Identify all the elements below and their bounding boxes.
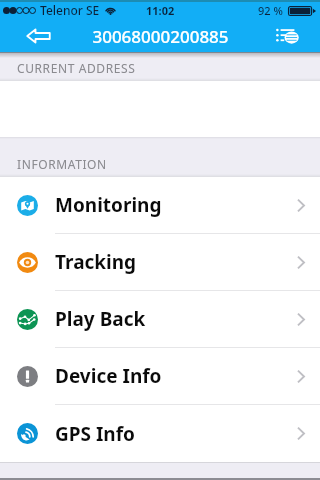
staticText: 92 %	[258, 3, 283, 18]
staticText: 30068000200885	[92, 25, 229, 48]
button[interactable]: Reports	[268, 20, 306, 52]
staticText: Tracking	[55, 249, 137, 275]
button[interactable]: Play Back	[0, 291, 320, 347]
staticText: 11:02	[146, 3, 175, 18]
button[interactable]: GPS Info	[0, 405, 320, 462]
staticText: Telenor SE	[40, 2, 100, 18]
staticText: INFORMATION	[17, 156, 107, 172]
staticText: CURRENT ADDRESS	[17, 60, 136, 76]
button[interactable]: Back	[16, 20, 60, 52]
staticText: GPS Info	[55, 421, 135, 447]
staticText: Device Info	[55, 363, 162, 389]
button[interactable]: Monitoring	[0, 177, 320, 233]
staticText: Play Back	[55, 306, 146, 332]
button[interactable]: Tracking	[0, 234, 320, 290]
staticText: Monitoring	[55, 192, 162, 218]
button[interactable]: Device Info	[0, 348, 320, 404]
